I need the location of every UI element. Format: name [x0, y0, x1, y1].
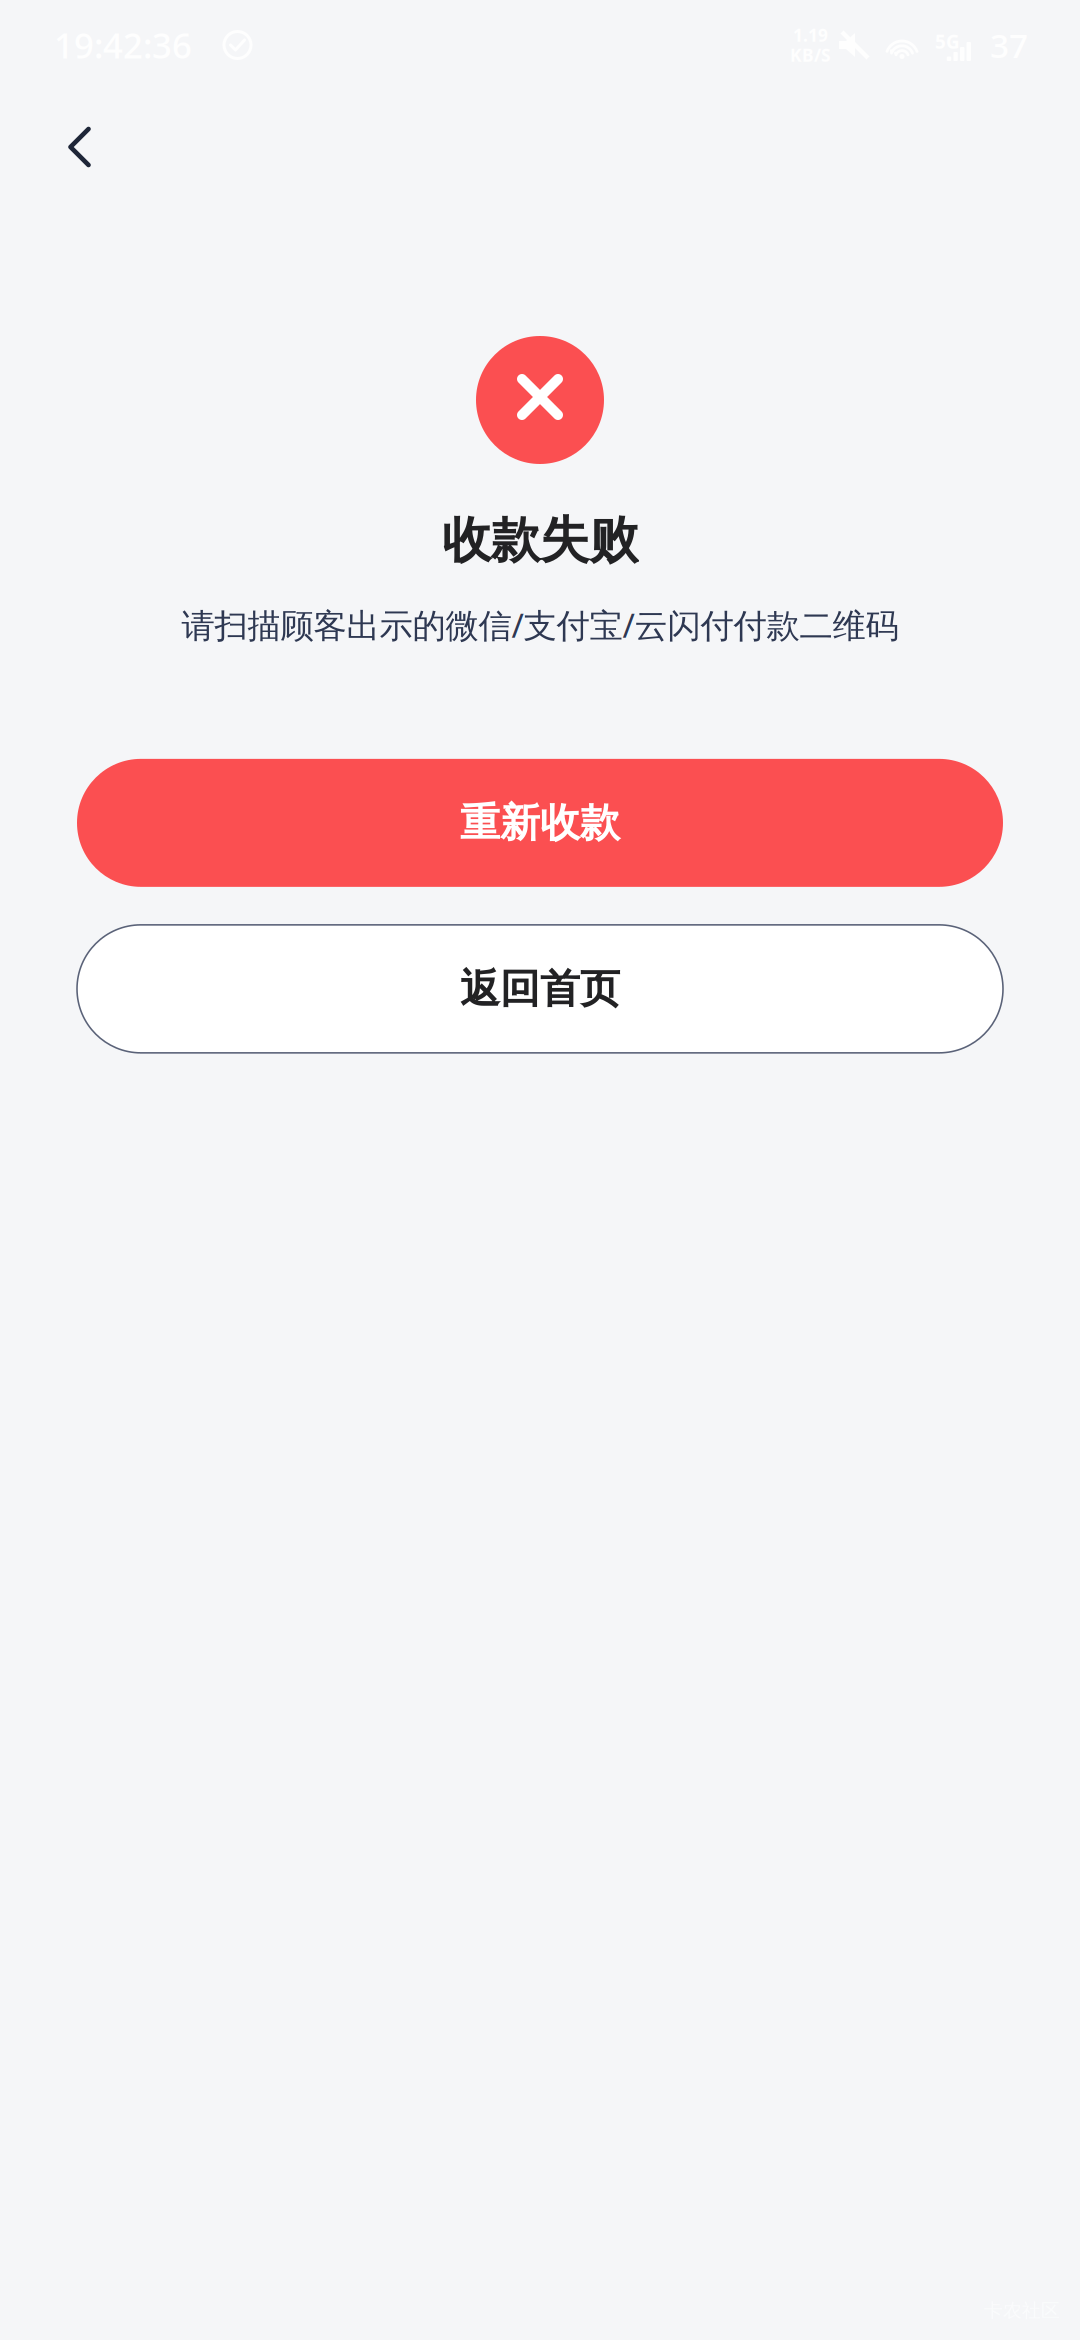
staticText: KB/S: [790, 43, 831, 66]
staticText: 1.19: [793, 23, 828, 46]
button[interactable]: Back: [36, 92, 128, 200]
staticText: 19:42:36: [54, 22, 192, 68]
staticText: 返回首页: [460, 964, 620, 1013]
staticText: 37: [990, 23, 1028, 67]
staticText: 收款失败: [442, 510, 638, 571]
button[interactable]: 返回首页: [77, 925, 1003, 1053]
staticText: 重新收款: [460, 798, 620, 847]
button[interactable]: 重新收款: [77, 759, 1003, 887]
staticText: 5G: [935, 29, 960, 54]
staticText: 请扫描顾客出示的微信/支付宝/云闪付付款二维码: [181, 603, 898, 647]
